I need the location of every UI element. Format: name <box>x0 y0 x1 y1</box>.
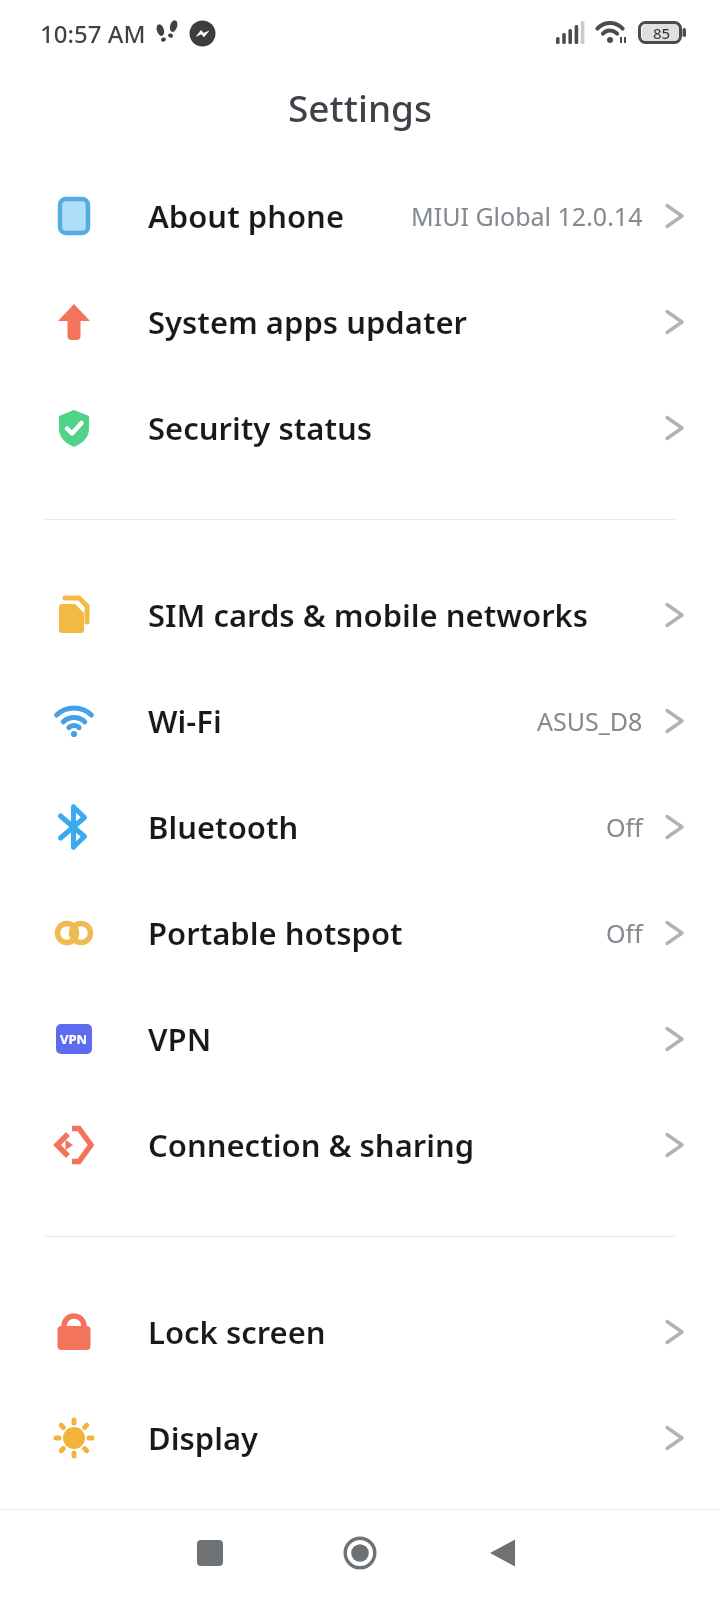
staticText: Connection & sharing <box>148 1124 475 1166</box>
staticText: VPN <box>148 1018 212 1060</box>
staticText: Off <box>606 916 643 950</box>
button[interactable]: VPN <box>0 986 720 1092</box>
staticText: Display <box>148 1417 259 1459</box>
staticText: SIM cards & mobile networks <box>148 594 589 636</box>
button[interactable] <box>490 1539 516 1567</box>
button[interactable]: Security status <box>0 375 720 481</box>
button[interactable]: System apps updater <box>0 269 720 375</box>
button[interactable] <box>197 1540 223 1566</box>
button[interactable]: Wi-Fi <box>0 668 720 774</box>
button[interactable]: SIM cards & mobile networks <box>0 562 720 668</box>
staticText: ASUS_D8 <box>537 704 643 738</box>
staticText: Off <box>606 810 643 844</box>
staticText: Settings <box>288 82 433 132</box>
staticText: VPN <box>60 1030 88 1048</box>
button[interactable]: Lock screen <box>0 1279 720 1385</box>
staticText: 85 <box>653 23 671 43</box>
button[interactable]: About phone <box>0 163 720 269</box>
staticText: Security status <box>148 407 373 449</box>
staticText: Bluetooth <box>148 806 299 848</box>
staticText: About phone <box>148 195 345 237</box>
button[interactable] <box>343 1536 377 1570</box>
staticText: Portable hotspot <box>148 912 403 954</box>
button[interactable]: Connection & sharing <box>0 1092 720 1198</box>
staticText: System apps updater <box>148 301 468 343</box>
button[interactable]: Portable hotspot <box>0 880 720 986</box>
button[interactable]: Bluetooth <box>0 774 720 880</box>
staticText: 10:57 AM <box>40 17 146 50</box>
button[interactable]: Display <box>0 1385 720 1491</box>
staticText: Wi-Fi <box>148 700 222 742</box>
staticText: Lock screen <box>148 1311 326 1353</box>
staticText: MIUI Global 12.0.14 <box>411 199 643 233</box>
